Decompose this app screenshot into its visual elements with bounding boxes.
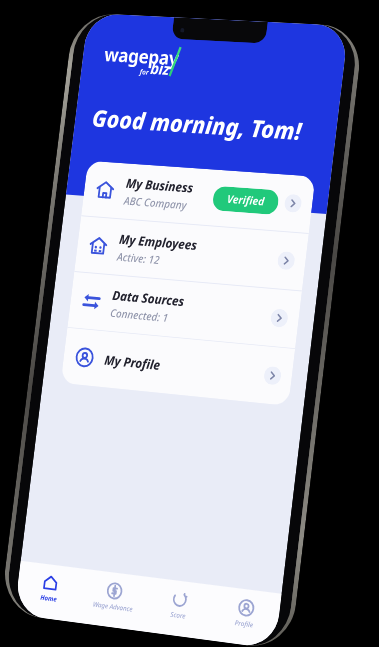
button[interactable]: Open My Employees xyxy=(277,251,296,270)
staticText: Profile xyxy=(234,618,254,630)
button[interactable]: Open My Profile xyxy=(263,366,282,386)
staticText: Wage Advance xyxy=(92,600,133,614)
button[interactable]: My Profile xyxy=(60,328,295,406)
staticText: My Business xyxy=(125,175,194,196)
button[interactable]: Data Sources xyxy=(67,272,302,348)
button[interactable]: Open Data Sources xyxy=(270,308,289,328)
button[interactable]: My Business xyxy=(81,161,316,233)
staticText: biz xyxy=(149,57,171,80)
staticText: Data Sources xyxy=(111,287,186,310)
staticText: My Profile xyxy=(103,351,161,374)
staticText: Connected: 1 xyxy=(109,305,170,326)
button[interactable]: Wage Advance xyxy=(78,569,149,631)
staticText: ABC Company xyxy=(123,193,188,213)
button[interactable]: Verified xyxy=(212,186,280,215)
staticText: My Employees xyxy=(118,231,199,254)
staticText: wagepay xyxy=(103,42,180,71)
button[interactable]: Profile xyxy=(208,585,282,647)
staticText: Good morning, Tom! xyxy=(90,101,304,147)
staticText: Score xyxy=(169,610,186,621)
button[interactable]: Open My Business xyxy=(283,194,303,213)
button[interactable]: Home xyxy=(14,561,84,623)
button[interactable]: Score xyxy=(142,577,215,640)
staticText: Active: 12 xyxy=(116,249,161,268)
button[interactable]: My Employees xyxy=(74,216,309,291)
staticText: Home xyxy=(39,593,58,605)
staticText: Verified xyxy=(226,191,266,209)
staticText: for xyxy=(139,67,150,77)
